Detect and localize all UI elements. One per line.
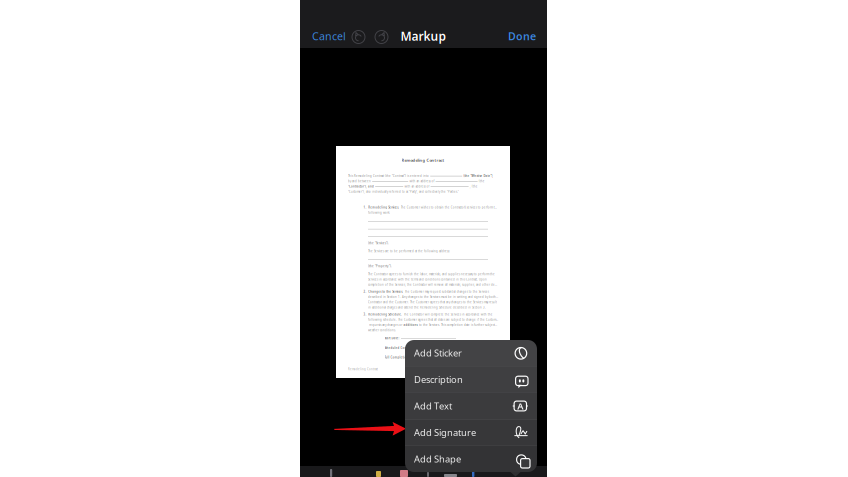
staticText: Cancel	[312, 29, 346, 43]
button[interactable]: Description	[405, 366, 537, 392]
staticText: following work:	[368, 211, 390, 214]
staticText: with an address of	[404, 185, 429, 188]
staticText: This Remodeling Contract (the “Contract”…	[348, 174, 429, 178]
staticText: Remodeling Contract	[348, 367, 378, 371]
staticText: The Customer wishes to obtain the Contra…	[401, 206, 496, 209]
staticText: Add Signature	[414, 426, 476, 439]
staticText: 1.	[364, 206, 367, 209]
staticText: A	[517, 400, 523, 412]
staticText: (the “Effective Date”),	[463, 174, 493, 178]
staticText: weather conditions.	[368, 328, 396, 332]
staticText: Services in accordance with the terms an…	[368, 278, 487, 281]
staticText: Markup	[400, 28, 446, 44]
button[interactable]: Add Sticker	[405, 340, 537, 366]
staticText: The Contractor agrees to furnish the lab…	[368, 272, 495, 276]
staticText: to the Services. This completion date is…	[419, 323, 497, 327]
staticText: (the	[479, 180, 485, 183]
staticText: Start Date:	[384, 337, 399, 340]
staticText: The Services are to be performed at the …	[368, 249, 450, 253]
button[interactable]: Cancel	[309, 24, 347, 48]
staticText: described in Section 1. Any changes to t…	[368, 295, 498, 299]
staticText: 2.	[364, 290, 367, 293]
button[interactable]: Done	[505, 24, 539, 48]
staticText: Remodeling Contract	[401, 157, 444, 163]
staticText: Add Sticker	[414, 347, 462, 359]
staticText: “Customer”), also individually referred …	[348, 190, 459, 193]
staticText: Scheduled Completion Date:	[384, 346, 427, 350]
staticText: Contractor and the Customer. The Custome…	[368, 300, 497, 304]
button[interactable]: Add Signature	[405, 419, 537, 445]
staticText: , (the	[470, 185, 478, 188]
staticText: completion of the Services, the Contract…	[368, 283, 498, 286]
staticText: additions	[404, 323, 418, 327]
staticText: 3.	[364, 313, 367, 316]
staticText: Done	[508, 29, 536, 43]
staticText: Add Shape	[414, 453, 461, 465]
staticText: “Contractor”), and	[348, 185, 374, 188]
button[interactable]: Add Shape	[405, 446, 537, 472]
staticText: with an address of	[409, 180, 434, 183]
staticText: Changes to the Services.	[368, 290, 403, 293]
staticText: (the “Services”).	[368, 241, 389, 245]
staticText: (the “Property”).	[368, 264, 392, 268]
staticText: The Customer may request substantial cha…	[405, 290, 489, 293]
button[interactable]: Add Text	[405, 393, 537, 419]
staticText: in additional charges and extend the Rem…	[368, 306, 486, 309]
staticText: Description	[414, 373, 463, 386]
staticText: Remodeling Schedule.	[368, 313, 402, 316]
staticText: Add Text	[414, 400, 452, 412]
button[interactable]: Redo	[370, 24, 393, 48]
button[interactable]: Undo	[347, 24, 370, 48]
staticText: The Contractor will complete the Service…	[404, 313, 493, 316]
staticText: Full Completion Date:	[384, 356, 417, 359]
staticText: requests any changes or	[369, 323, 402, 327]
staticText: Remodeling Services.	[368, 206, 399, 209]
staticText: by and between	[348, 180, 371, 183]
staticText: following schedule. The Customer agrees …	[368, 318, 498, 321]
